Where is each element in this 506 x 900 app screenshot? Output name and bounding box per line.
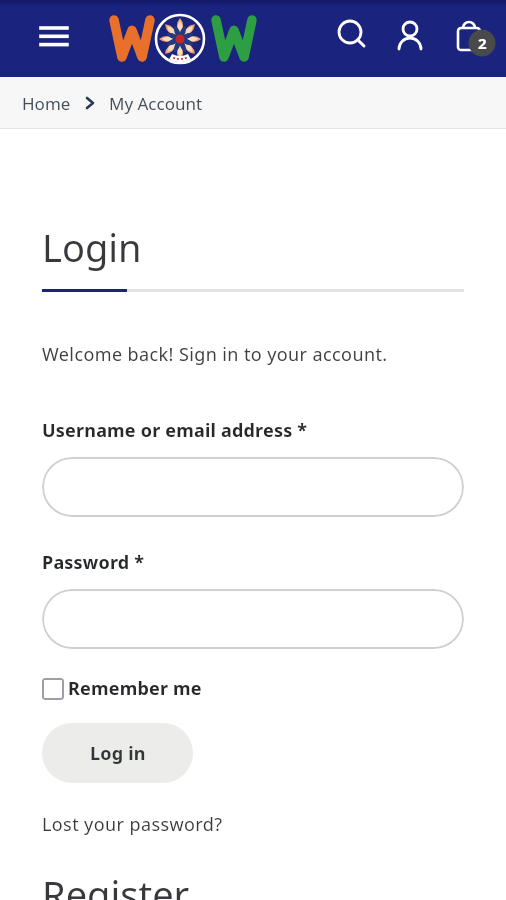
staticText: 2 <box>478 33 487 53</box>
button[interactable] <box>388 10 432 54</box>
staticText: My Account <box>109 92 203 115</box>
button[interactable]: Lost your password? <box>42 812 223 837</box>
button[interactable] <box>330 12 372 54</box>
button[interactable] <box>31 13 75 57</box>
button[interactable]: Log in <box>42 723 193 783</box>
button[interactable] <box>42 589 464 649</box>
button[interactable]: Home <box>22 92 71 115</box>
button[interactable]: 2 <box>446 6 500 60</box>
staticText: Login <box>42 221 142 273</box>
staticText: Remember me <box>68 676 202 701</box>
staticText: Welcome back! Sign in to your account. <box>42 342 388 367</box>
staticText: Password * <box>42 550 145 575</box>
staticText: Register <box>42 868 190 900</box>
button[interactable]: Remember me <box>42 676 202 701</box>
staticText: Username or email address * <box>42 418 308 443</box>
button[interactable] <box>106 10 252 68</box>
button[interactable] <box>42 457 464 517</box>
staticText: Log in <box>90 741 146 766</box>
